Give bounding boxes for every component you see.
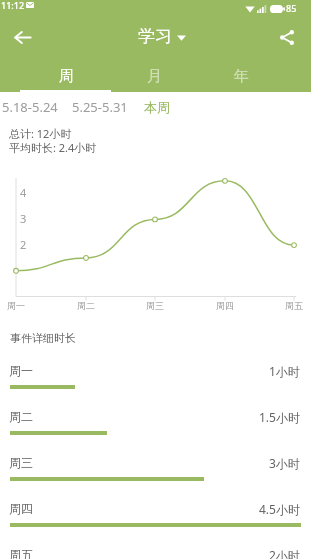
button[interactable]: 周三 <box>0 455 311 501</box>
button[interactable]: 周二 <box>0 409 311 455</box>
button[interactable]: 5.18-5.24 <box>1 98 59 116</box>
staticText: 1.5小时 <box>259 409 300 425</box>
button[interactable]: Back <box>6 21 38 53</box>
button[interactable]: 周四 <box>0 501 311 547</box>
button[interactable]: 周一 <box>0 363 311 409</box>
staticText: 周四 <box>9 501 33 516</box>
staticText: 周五 <box>285 300 303 311</box>
button[interactable]: 周五 <box>0 547 311 559</box>
staticText: 周三 <box>146 300 164 311</box>
staticText: 2 <box>20 237 27 252</box>
staticText: 周四 <box>216 300 234 311</box>
staticText: 周一 <box>9 363 33 378</box>
button[interactable]: 年 <box>196 62 287 90</box>
button[interactable]: 本周 <box>143 99 171 115</box>
staticText: 周三 <box>9 455 33 470</box>
staticText: 周二 <box>77 300 95 311</box>
staticText: 4 <box>20 185 27 200</box>
staticText: 1小时 <box>269 363 300 379</box>
button[interactable]: Share <box>271 21 303 53</box>
staticText: 11:12 <box>1 0 25 11</box>
staticText: 周一 <box>7 300 25 311</box>
staticText: 85 <box>286 2 297 14</box>
staticText: 2小时 <box>269 547 300 559</box>
staticText: 周 <box>59 67 74 86</box>
staticText: 月 <box>147 67 162 86</box>
staticText: 3 <box>20 211 27 226</box>
staticText: 3小时 <box>269 455 300 471</box>
staticText: 周五 <box>9 547 33 559</box>
staticText: 年 <box>234 67 249 86</box>
staticText: 总计: 12小时 <box>9 126 72 141</box>
button[interactable]: 5.25-5.31 <box>71 98 129 116</box>
button[interactable]: 学习 <box>135 24 189 49</box>
staticText: 事件详细时长 <box>10 331 76 345</box>
staticText: 平均时长: 2.4小时 <box>9 140 97 155</box>
button[interactable]: 周 <box>21 62 112 90</box>
button[interactable]: 月 <box>109 62 200 90</box>
staticText: 4.5小时 <box>259 501 300 517</box>
staticText: 周二 <box>9 409 33 424</box>
staticText: 学习 <box>138 26 172 47</box>
